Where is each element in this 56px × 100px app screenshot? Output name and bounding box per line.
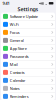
button[interactable]: Notes — [1, 85, 55, 92]
staticText: Notes — [10, 86, 20, 91]
button[interactable]: Reminders — [1, 93, 55, 100]
button[interactable]: Mail — [1, 61, 55, 68]
staticText: Focus — [10, 30, 20, 35]
staticText: Mail — [10, 62, 18, 67]
staticText: Contacts — [10, 70, 25, 75]
staticText: 9:41 — [3, 1, 10, 6]
button[interactable]: App Store — [1, 45, 55, 52]
staticText: General — [10, 38, 24, 43]
button[interactable]: Contacts — [1, 69, 55, 76]
staticText: App Store — [10, 46, 27, 51]
staticText: Settings — [17, 6, 38, 13]
button[interactable]: Passwords — [1, 53, 55, 60]
staticText: Software Update — [10, 14, 38, 19]
button[interactable]: Wi-Fi — [1, 21, 55, 28]
staticText: Calendar — [10, 78, 26, 83]
button[interactable]: Software Update — [1, 13, 55, 20]
staticText: Reminders — [10, 94, 29, 99]
staticText: Passwords — [10, 54, 29, 59]
button[interactable]: Calendar — [1, 77, 55, 84]
button[interactable]: Focus — [1, 29, 55, 36]
staticText: Wi-Fi — [10, 22, 19, 27]
button[interactable]: General — [1, 37, 55, 44]
